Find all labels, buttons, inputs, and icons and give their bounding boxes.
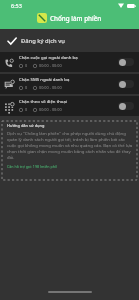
staticText: 0 xyxy=(25,85,28,90)
staticText: 6:53 xyxy=(11,2,22,9)
staticText: 00:00 - 00:00 xyxy=(39,63,62,68)
button[interactable]: Toggle xyxy=(118,80,134,88)
button[interactable]: Chặn SMS ngoài danh bạ xyxy=(0,74,139,94)
staticText: 0 xyxy=(25,63,28,68)
staticText: Dịch vụ "Chống làm phiền" cho phép người… xyxy=(7,130,133,160)
button[interactable]: Chặn cuộc gọi ngoài danh bạ xyxy=(0,52,139,72)
staticText: Chặn SMS ngoài danh bạ xyxy=(19,76,70,82)
staticText: 00:00 - 00:00 xyxy=(39,107,62,112)
staticText: Hướng dẫn sử dụng xyxy=(7,123,45,128)
button[interactable]: Hướng dẫn sử dụng xyxy=(2,121,137,180)
staticText: Chặn theo số điện thoại xyxy=(19,98,67,104)
button[interactable]: Toggle xyxy=(118,58,134,66)
button[interactable]: Đăng ký dịch vụ xyxy=(0,29,139,52)
button[interactable]: Chặn theo số điện thoại xyxy=(0,96,139,116)
staticText: 0 xyxy=(25,107,28,112)
staticText: 00:00 - 00:00 xyxy=(39,85,62,90)
staticText: Đăng ký dịch vụ xyxy=(21,37,65,45)
staticText: Chống làm phiền xyxy=(50,14,102,23)
button[interactable]: Toggle xyxy=(118,102,134,110)
staticText: Cần hỗ trợ gọi: 198 (miễn phí) xyxy=(7,164,57,169)
staticText: Chặn cuộc gọi ngoài danh bạ xyxy=(19,54,78,60)
